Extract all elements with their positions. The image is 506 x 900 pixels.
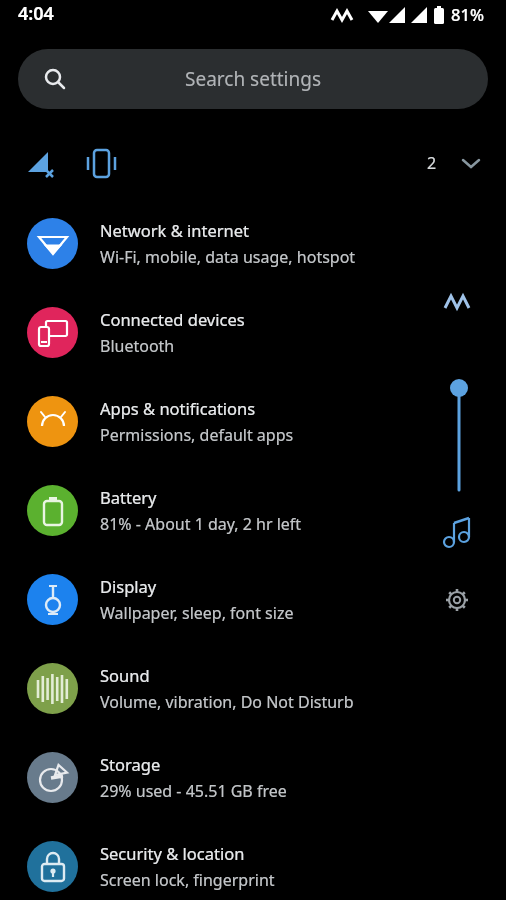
- staticText: Permissions, default apps: [100, 424, 294, 446]
- staticText: Connected devices: [100, 308, 245, 330]
- button[interactable]: Battery: [0, 466, 506, 555]
- button[interactable]: Sound: [0, 644, 506, 733]
- staticText: 81% - About 1 day, 2 hr left: [100, 513, 302, 535]
- button[interactable]: Security & location: [0, 822, 506, 900]
- staticText: Screen lock, fingerprint: [100, 869, 275, 891]
- button[interactable]: Apps & notifications: [0, 377, 506, 466]
- staticText: 29% used - 45.51 GB free: [100, 780, 287, 802]
- staticText: Sound: [100, 664, 150, 686]
- button[interactable]: Display: [0, 555, 506, 644]
- button[interactable]: Connected devices: [0, 288, 506, 377]
- staticText: 4:04: [18, 1, 54, 26]
- button[interactable]: Network & internet: [0, 199, 506, 288]
- staticText: 2: [427, 152, 437, 174]
- staticText: Wallpaper, sleep, font size: [100, 602, 294, 624]
- staticText: Volume, vibration, Do Not Disturb: [100, 691, 354, 713]
- staticText: Storage: [100, 753, 161, 775]
- staticText: Search settings: [185, 66, 322, 92]
- staticText: 81%: [451, 3, 484, 25]
- staticText: Bluetooth: [100, 335, 175, 357]
- button[interactable]: 2: [0, 138, 506, 188]
- staticText: Network & internet: [100, 219, 250, 241]
- staticText: Display: [100, 575, 157, 597]
- staticText: Wi-Fi, mobile, data usage, hotspot: [100, 246, 356, 268]
- staticText: Security & location: [100, 842, 245, 864]
- staticText: Apps & notifications: [100, 397, 256, 419]
- button[interactable]: Search settings: [18, 49, 488, 109]
- button[interactable]: Storage: [0, 733, 506, 822]
- staticText: Battery: [100, 486, 157, 508]
